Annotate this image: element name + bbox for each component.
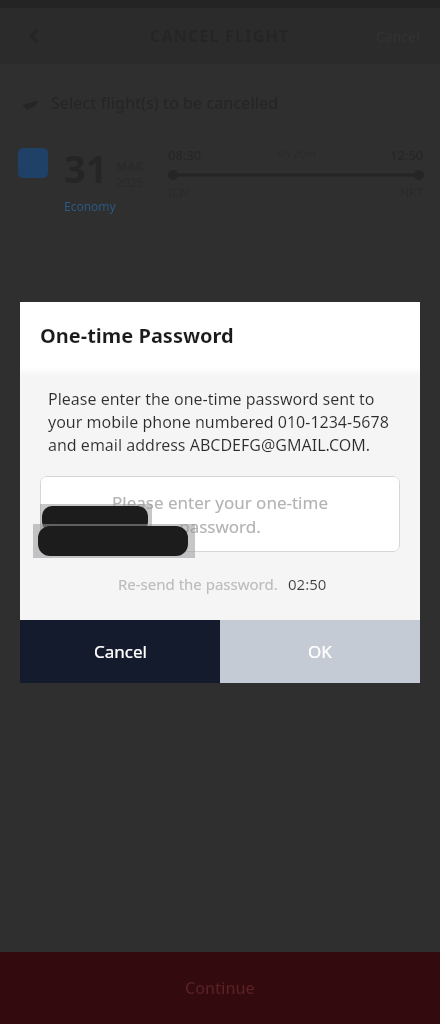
staticText: One-time Password bbox=[40, 322, 234, 349]
staticText: Continue bbox=[185, 977, 255, 999]
button[interactable]: Please enter your one-time password. bbox=[40, 476, 400, 552]
button[interactable]: Cancel bbox=[20, 620, 220, 683]
staticText: Please enter the one-time password sent … bbox=[48, 388, 392, 456]
staticText: Re-send the password. bbox=[118, 574, 278, 594]
staticText: Cancel bbox=[94, 640, 147, 663]
staticText: OK bbox=[308, 640, 332, 663]
staticText: 02:50 bbox=[288, 574, 327, 594]
button[interactable]: Select flight bbox=[18, 148, 48, 178]
staticText: 08:30 bbox=[168, 146, 202, 164]
button[interactable]: Re-send the password. bbox=[118, 574, 278, 594]
button[interactable]: OK bbox=[220, 620, 420, 683]
staticText: Economy bbox=[64, 198, 116, 214]
staticText: Select flight(s) to be cancelled bbox=[51, 92, 279, 114]
staticText: Please enter your one-time password. bbox=[80, 491, 360, 538]
staticText: 31 bbox=[64, 142, 108, 194]
